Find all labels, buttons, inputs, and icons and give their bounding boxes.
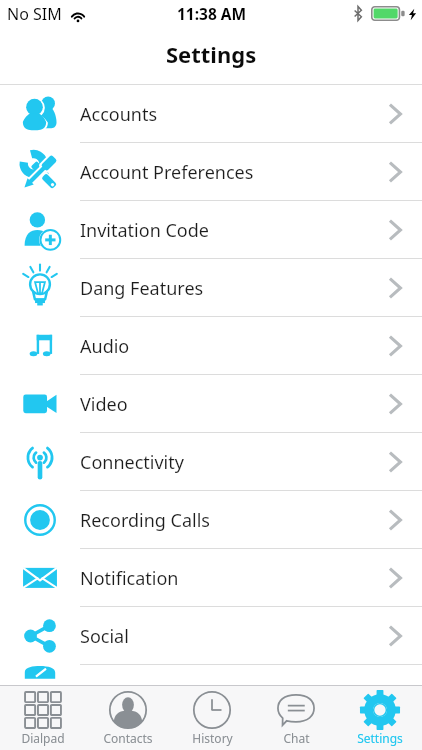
button[interactable]: Invitation Code — [0, 201, 422, 259]
staticText: Account Preferences — [80, 160, 254, 185]
staticText: Contacts — [103, 730, 153, 746]
staticText: Settings — [357, 730, 403, 746]
staticText: Video — [80, 392, 128, 417]
staticText: Notification — [80, 566, 179, 591]
button[interactable]: Feedback — [0, 665, 422, 723]
staticText: No SIM — [7, 3, 62, 25]
button[interactable]: Connectivity — [0, 433, 422, 491]
staticText: Settings — [166, 39, 257, 69]
staticText: Accounts — [80, 102, 158, 127]
button[interactable]: Social — [0, 607, 422, 665]
staticText: Audio — [80, 334, 130, 359]
button[interactable]: Dialpad — [0, 686, 85, 750]
button[interactable]: History — [170, 686, 254, 750]
button[interactable]: Audio — [0, 317, 422, 375]
staticText: Chat — [283, 730, 310, 746]
button[interactable]: Video — [0, 375, 422, 433]
button[interactable]: Settings — [338, 686, 422, 750]
button[interactable]: Dang Features — [0, 259, 422, 317]
staticText: Connectivity — [80, 450, 184, 475]
button[interactable]: Accounts — [0, 85, 422, 143]
staticText: Dialpad — [21, 730, 65, 746]
staticText: 11:38 AM — [177, 3, 247, 24]
button[interactable]: Chat — [254, 686, 338, 750]
button[interactable]: Notification — [0, 549, 422, 607]
staticText: Recording Calls — [80, 508, 210, 533]
button[interactable]: Recording Calls — [0, 491, 422, 549]
staticText: Dang Features — [80, 276, 204, 301]
button[interactable]: Account Preferences — [0, 143, 422, 201]
button[interactable]: Contacts — [85, 686, 170, 750]
staticText: Social — [80, 624, 129, 649]
staticText: History — [192, 730, 233, 746]
staticText: Invitation Code — [80, 218, 209, 243]
